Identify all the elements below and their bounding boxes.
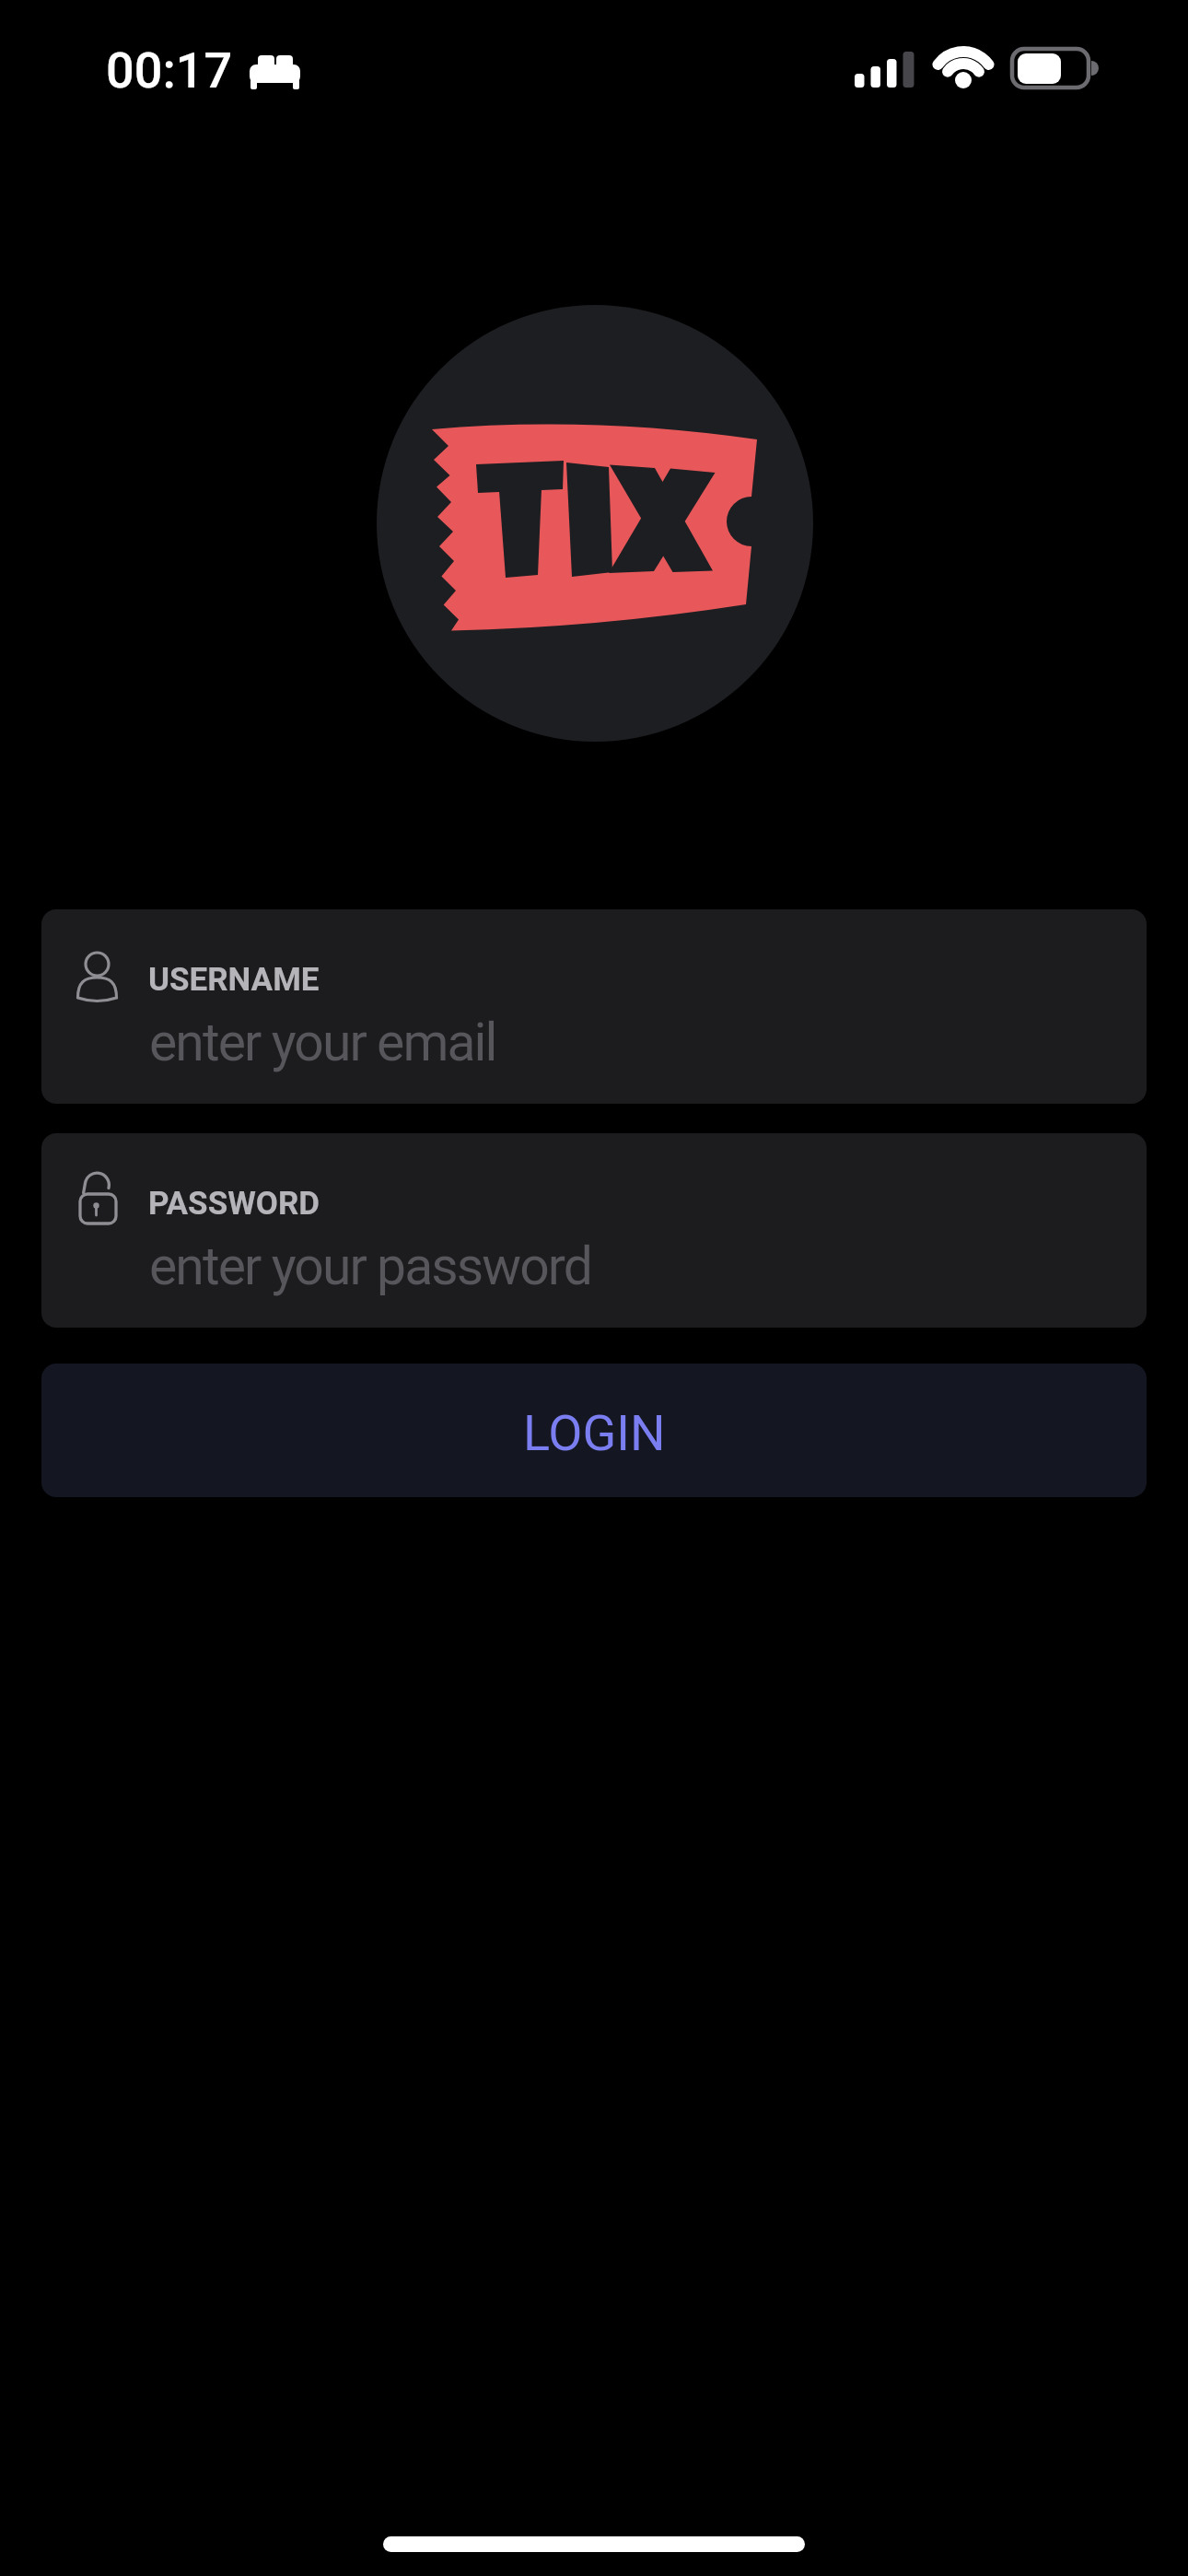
staticText: 00:17 bbox=[106, 41, 233, 100]
staticText: LOGIN bbox=[523, 1404, 666, 1462]
button[interactable]: PASSWORD bbox=[41, 1133, 1147, 1328]
button[interactable]: LOGIN bbox=[41, 1364, 1147, 1497]
staticText: enter your password bbox=[149, 1235, 591, 1297]
staticText: enter your email bbox=[149, 1012, 496, 1073]
staticText: PASSWORD bbox=[148, 1185, 320, 1223]
staticText: USERNAME bbox=[148, 961, 320, 999]
button[interactable]: USERNAME bbox=[41, 909, 1147, 1104]
